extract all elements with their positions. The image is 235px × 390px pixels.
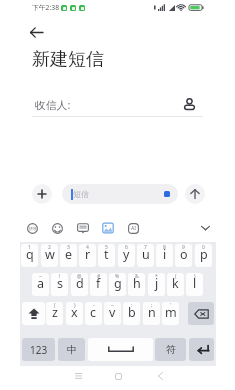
staticText: 6: [125, 244, 128, 251]
button[interactable]: Pinyin: [24, 220, 40, 236]
staticText: ): [74, 302, 76, 309]
staticText: e: [65, 246, 73, 263]
button[interactable]: Enter: [189, 338, 214, 361]
button[interactable]: #: [90, 273, 107, 296]
staticText: 1: [28, 244, 31, 251]
staticText: (: [54, 302, 56, 309]
staticText: 拼音: [29, 226, 37, 231]
staticText: 4: [86, 244, 89, 251]
button[interactable]: 收信人:: [32, 92, 204, 116]
staticText: s: [57, 275, 63, 292]
button[interactable]: Back: [26, 22, 46, 42]
button[interactable]: 中: [58, 338, 85, 361]
button[interactable]: -: [85, 302, 102, 325]
staticText: n: [148, 304, 156, 321]
staticText: (: [175, 273, 177, 280]
button[interactable]: 2: [41, 244, 58, 267]
staticText: c: [90, 304, 97, 321]
staticText: d: [76, 275, 84, 292]
button[interactable]: Back: [151, 366, 169, 386]
staticText: 7: [144, 244, 147, 251]
button[interactable]: 123: [22, 338, 55, 361]
button[interactable]: 3: [60, 244, 77, 267]
button[interactable]: ): [186, 273, 203, 296]
button[interactable]: (: [46, 302, 63, 325]
button[interactable]: &: [128, 273, 145, 296]
staticText: 9: [182, 244, 185, 251]
button[interactable]: ;: [143, 302, 160, 325]
button[interactable]: 1: [21, 244, 38, 267]
button[interactable]: Recent apps: [69, 366, 87, 386]
button[interactable]: 8: [156, 244, 173, 267]
button[interactable]: Hide keyboard: [197, 220, 213, 236]
staticText: ~: [111, 302, 114, 309]
staticText: @: [77, 273, 82, 280]
staticText: l: [193, 275, 197, 292]
staticText: AI: [131, 225, 136, 232]
staticText: f: [96, 275, 101, 292]
button[interactable]: Phrases: [75, 220, 91, 236]
staticText: y: [123, 246, 130, 263]
staticText: 123: [30, 343, 48, 357]
button[interactable]: ': [162, 302, 179, 325]
staticText: b: [128, 304, 136, 321]
button[interactable]: ~: [104, 302, 121, 325]
button[interactable]: 6: [118, 244, 135, 267]
button[interactable]: AI assistant: [125, 220, 141, 236]
button[interactable]: Home: [109, 366, 127, 386]
staticText: k: [172, 275, 179, 292]
staticText: 中: [67, 343, 77, 356]
button[interactable]: 符: [155, 338, 186, 361]
staticText: p: [200, 246, 208, 263]
button[interactable]: %: [109, 273, 126, 296]
button[interactable]: Send: [185, 184, 205, 204]
button[interactable]: ): [66, 302, 83, 325]
staticText: u: [142, 246, 150, 263]
button[interactable]: *: [148, 273, 165, 296]
staticText: %: [115, 273, 120, 280]
staticText: &: [135, 273, 139, 280]
staticText: i: [163, 246, 167, 263]
staticText: v: [109, 304, 116, 321]
button[interactable]: 4: [79, 244, 96, 267]
button[interactable]: :: [123, 302, 140, 325]
button[interactable]: Delete: [188, 302, 214, 325]
button[interactable]: !: [51, 273, 68, 296]
staticText: o: [180, 246, 188, 263]
staticText: 2: [48, 244, 51, 251]
staticText: :: [131, 302, 133, 309]
staticText: 5: [105, 244, 108, 251]
staticText: a: [37, 275, 45, 292]
staticText: ': [170, 302, 172, 309]
button[interactable]: Shift: [22, 302, 45, 325]
staticText: t: [104, 246, 109, 263]
staticText: ;: [151, 302, 153, 309]
button[interactable]: 0: [195, 244, 212, 267]
staticText: w: [45, 246, 55, 263]
staticText: j: [155, 275, 159, 292]
staticText: 下午2:38: [32, 3, 60, 12]
staticText: 3: [67, 244, 70, 251]
staticText: !: [59, 273, 61, 280]
button[interactable]: @: [71, 273, 88, 296]
button[interactable]: (: [167, 273, 184, 296]
button[interactable]: ~: [32, 273, 49, 296]
button[interactable]: Space: [88, 338, 153, 361]
staticText: ~: [39, 273, 42, 280]
button[interactable]: 9: [175, 244, 192, 267]
button[interactable]: Pick contact: [178, 93, 200, 115]
staticText: ): [194, 273, 196, 280]
button[interactable]: More options: [32, 184, 52, 204]
staticText: 新建短信: [32, 48, 104, 71]
button[interactable]: 短信: [62, 184, 178, 204]
staticText: 收信人:: [35, 97, 71, 112]
staticText: g: [114, 275, 122, 292]
staticText: 短信: [73, 189, 89, 199]
staticText: x: [71, 304, 78, 321]
button[interactable]: 7: [137, 244, 154, 267]
button[interactable]: 5: [98, 244, 115, 267]
staticText: q: [26, 246, 34, 263]
staticText: 符: [166, 343, 176, 356]
button[interactable]: Emoji: [49, 220, 65, 236]
button[interactable]: Stickers: [100, 220, 116, 236]
